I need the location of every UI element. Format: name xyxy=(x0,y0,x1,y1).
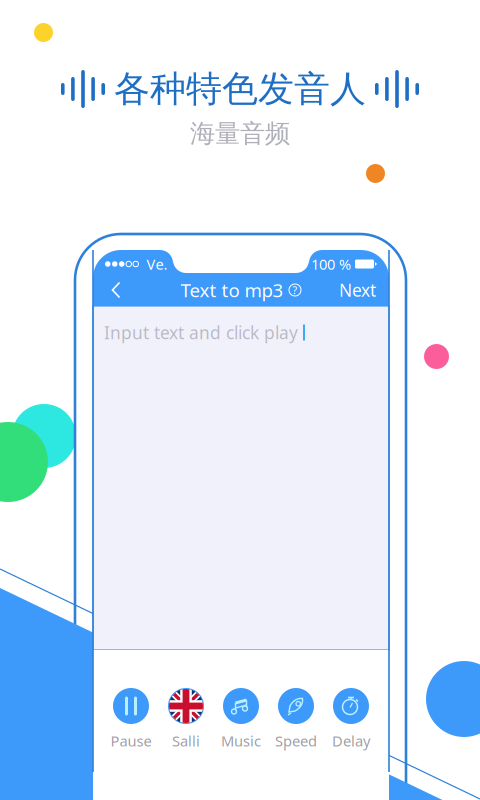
staticText: 各种特色发音人 xyxy=(114,67,366,111)
button[interactable]: Delay xyxy=(323,688,378,750)
button[interactable]: Text to mp3 xyxy=(180,274,301,306)
button[interactable]: Salli xyxy=(158,688,213,750)
staticText: Salli xyxy=(172,731,200,750)
staticText: 100 % xyxy=(311,254,351,274)
button[interactable]: Next xyxy=(333,274,382,306)
staticText: Music xyxy=(221,731,261,750)
staticText: Delay xyxy=(332,731,370,750)
staticText: Next xyxy=(339,278,376,301)
button[interactable]: Speed xyxy=(268,688,323,750)
staticText: 海量音频 xyxy=(190,118,290,149)
staticText: ? xyxy=(292,283,297,297)
staticText: Pause xyxy=(110,731,151,750)
staticText: Input text and click play xyxy=(104,321,298,344)
staticText: Speed xyxy=(275,731,317,750)
staticText: Text to mp3 xyxy=(180,278,283,302)
staticText: Ve. xyxy=(138,254,167,274)
button[interactable]: Back xyxy=(100,274,132,306)
button[interactable]: Music xyxy=(213,688,268,750)
button[interactable]: Pause xyxy=(103,688,158,750)
